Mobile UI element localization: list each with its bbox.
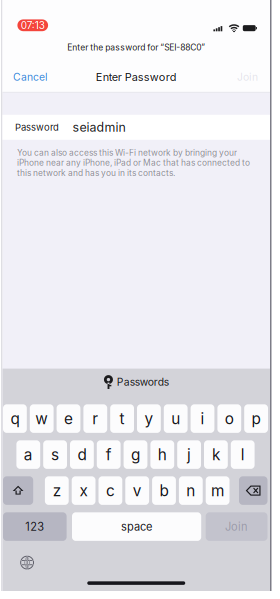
staticText: o — [225, 409, 234, 428]
staticText: f — [106, 445, 112, 464]
staticText: Cancel — [13, 71, 48, 83]
staticText: d — [77, 445, 86, 464]
staticText: You can also access this Wi-Fi network b… — [17, 147, 250, 178]
staticText: 123 — [25, 520, 44, 533]
button[interactable]: e — [57, 404, 80, 433]
staticText: Enter Password — [96, 70, 177, 84]
staticText: Enter the password for “SEI-88C0” — [67, 42, 205, 53]
button[interactable]: Passwords — [104, 374, 169, 390]
staticText: Passwords — [117, 376, 169, 388]
button[interactable]: o — [217, 404, 241, 433]
button[interactable]: f — [97, 440, 121, 469]
staticText: g — [131, 445, 140, 464]
button[interactable]: a — [16, 440, 40, 469]
button[interactable]: Join — [215, 62, 258, 92]
staticText: u — [171, 409, 180, 428]
button[interactable]: z — [45, 476, 69, 505]
staticText: Join — [237, 71, 258, 83]
button[interactable]: g — [124, 440, 147, 469]
staticText: Join — [225, 520, 248, 533]
button[interactable]: v — [125, 476, 149, 505]
staticText: space — [121, 520, 152, 533]
button[interactable]: j — [177, 440, 201, 469]
button[interactable]: b — [152, 476, 176, 505]
button[interactable]: x — [72, 476, 95, 505]
staticText: b — [159, 481, 168, 500]
button[interactable]: s — [43, 440, 67, 469]
staticText: j — [187, 445, 191, 464]
staticText: v — [133, 481, 142, 500]
staticText: z — [53, 481, 61, 500]
button[interactable]: d — [70, 440, 94, 469]
button[interactable]: c — [98, 476, 122, 505]
staticText: Password — [15, 122, 59, 133]
button[interactable]: n — [179, 476, 203, 505]
staticText: w — [35, 409, 48, 428]
staticText: c — [106, 481, 115, 500]
button[interactable]: p — [244, 404, 268, 433]
button[interactable]: h — [150, 440, 174, 469]
button[interactable]: l — [231, 440, 255, 469]
staticText: k — [212, 445, 220, 464]
button[interactable]: q — [3, 404, 27, 433]
button[interactable]: y — [137, 404, 161, 433]
staticText: n — [186, 481, 195, 500]
staticText: i — [200, 409, 204, 428]
button[interactable]: Join — [206, 512, 267, 541]
staticText: r — [92, 409, 98, 428]
button[interactable]: Cancel — [13, 62, 59, 92]
staticText: x — [80, 481, 88, 500]
staticText: a — [24, 445, 33, 464]
button[interactable]: k — [204, 440, 228, 469]
button[interactable]: r — [83, 404, 107, 433]
staticText: m — [211, 481, 224, 500]
staticText: e — [64, 409, 73, 428]
button[interactable]: m — [206, 476, 229, 505]
button[interactable]: Delete — [239, 476, 267, 505]
button[interactable]: u — [164, 404, 188, 433]
button[interactable]: 123 — [3, 512, 67, 541]
staticText: h — [158, 445, 167, 464]
button[interactable]: t — [110, 404, 134, 433]
button[interactable]: w — [30, 404, 54, 433]
staticText: 07:13 — [21, 19, 45, 31]
button[interactable]: space — [72, 512, 201, 541]
button[interactable]: i — [191, 404, 214, 433]
button[interactable]: Shift — [3, 476, 33, 505]
button[interactable]: Next keyboard — [20, 555, 34, 570]
staticText: s — [51, 445, 59, 464]
staticText: seiadmin — [72, 120, 125, 135]
staticText: t — [120, 409, 125, 428]
staticText: y — [144, 409, 153, 428]
staticText: q — [10, 409, 19, 428]
staticText: l — [241, 445, 245, 464]
staticText: p — [252, 409, 261, 428]
